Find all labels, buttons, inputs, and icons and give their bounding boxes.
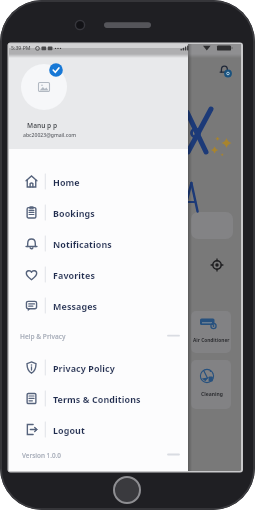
staticText: Favorites <box>53 269 96 281</box>
staticText: Bookings <box>53 207 95 219</box>
button[interactable] <box>191 212 233 239</box>
staticText: 5:39 PM <box>11 44 31 51</box>
button[interactable]: Messages <box>15 295 182 316</box>
button[interactable] <box>191 311 231 353</box>
staticText: Air Conditioner <box>193 337 230 344</box>
button[interactable]: Terms & Conditions <box>15 388 182 409</box>
staticText: Messages <box>53 300 98 312</box>
button[interactable]: Notifications <box>15 233 182 254</box>
button[interactable]: Home <box>15 171 182 192</box>
staticText: Privacy Policy <box>53 362 115 374</box>
button[interactable]: Privacy Policy <box>15 357 182 378</box>
staticText: Logout <box>53 424 85 436</box>
staticText: Home <box>53 176 80 188</box>
button[interactable]: Logout <box>15 419 182 440</box>
staticText: Cleaning <box>201 391 223 398</box>
button[interactable] <box>191 360 231 409</box>
staticText: Manu p p <box>27 121 58 130</box>
staticText: Version 1.0.0 <box>22 451 62 460</box>
staticText: abc20023@gmail.com <box>23 132 77 139</box>
button[interactable]: Favorites <box>15 264 182 285</box>
button[interactable]: Bookings <box>15 202 182 223</box>
staticText: Terms & Conditions <box>53 393 141 405</box>
staticText: Notifications <box>53 238 112 250</box>
button[interactable] <box>9 44 188 149</box>
staticText: Help & Privacy <box>20 332 66 341</box>
